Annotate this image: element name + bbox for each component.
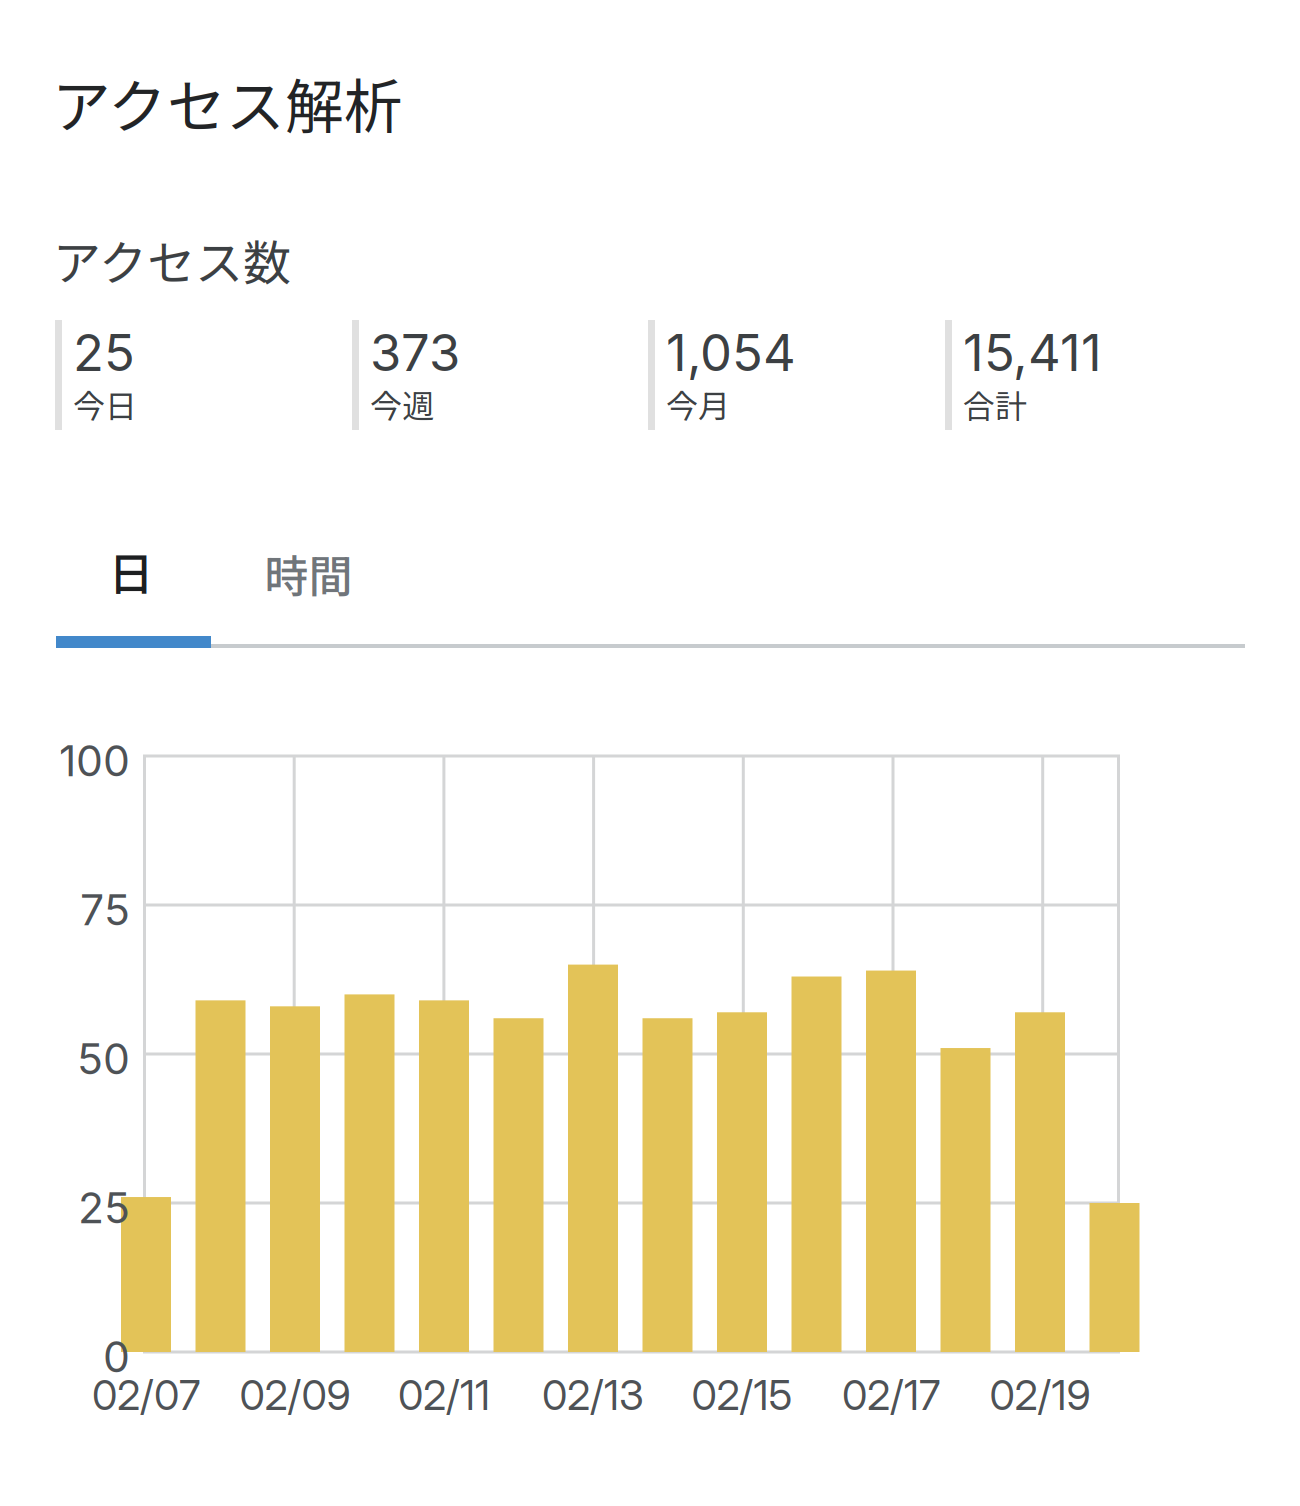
staticText: 0 [103,1331,130,1383]
staticText: 02/13 [542,1370,644,1420]
staticText: 1,054 [666,322,796,383]
staticText: 50 [77,1033,130,1085]
staticText: 今週 [370,381,434,427]
staticText: 今月 [666,381,730,427]
staticText: 02/07 [92,1370,200,1420]
staticText: 今日 [73,381,137,427]
staticText: 100 [59,735,130,787]
staticText: 373 [370,322,460,383]
button[interactable]: 時間 [210,516,407,630]
staticText: 02/15 [691,1370,792,1420]
staticText: 時間 [264,541,352,605]
staticText: 02/11 [398,1370,490,1420]
button[interactable]: 日 [54,514,208,628]
staticText: アクセス数 [53,225,291,294]
staticText: 02/17 [842,1370,940,1420]
staticText: 02/09 [239,1370,350,1420]
staticText: 25 [78,1182,130,1234]
staticText: 日 [108,538,153,604]
staticText: 合計 [963,381,1027,427]
staticText: アクセス解析 [52,60,403,145]
staticText: 25 [73,322,135,383]
staticText: 02/19 [989,1370,1090,1420]
staticText: 15,411 [963,322,1102,383]
staticText: 75 [80,884,130,936]
